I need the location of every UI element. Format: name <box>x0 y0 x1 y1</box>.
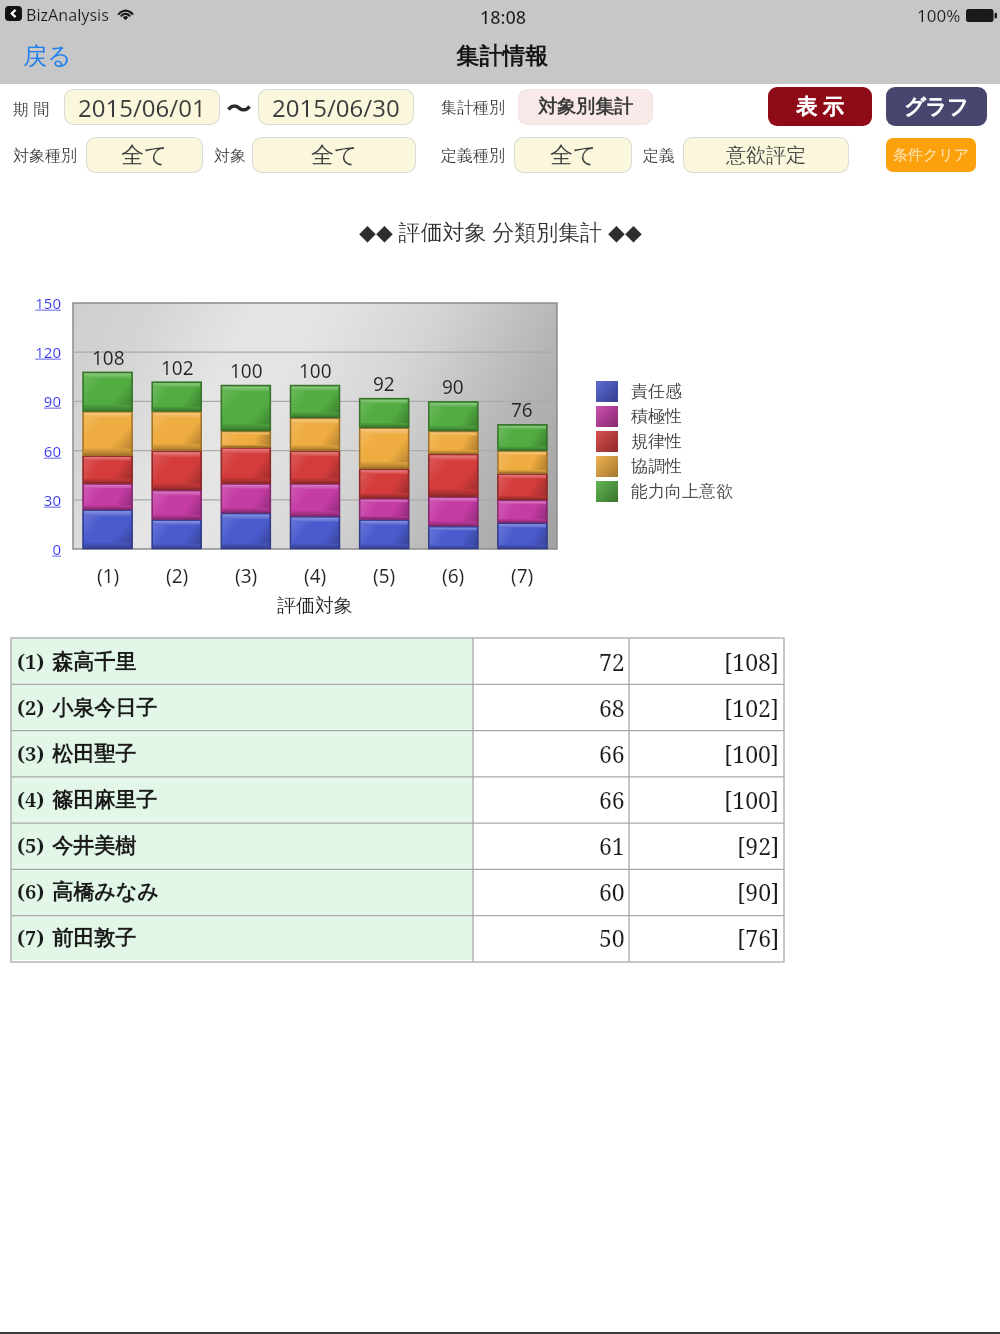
staticText: 全て <box>550 141 597 170</box>
staticText: (3) <box>235 563 258 589</box>
staticText: (1) <box>97 563 120 589</box>
button[interactable]: 全て <box>86 137 203 173</box>
staticText: 102 <box>161 355 194 381</box>
staticText: 松田聖子 <box>52 741 136 767</box>
button[interactable]: (5) <box>11 822 784 868</box>
staticText: 100 <box>299 358 332 384</box>
staticText: 68 <box>599 692 625 723</box>
staticText: 61 <box>599 830 625 861</box>
staticText: (2) <box>166 563 189 589</box>
staticText: (1) <box>17 648 45 675</box>
staticText: 協調性 <box>631 456 682 477</box>
staticText: 対象種別 <box>13 146 77 166</box>
staticText: (3) <box>17 740 45 767</box>
staticText: 90 <box>442 374 464 400</box>
staticText: 森高千里 <box>52 649 136 675</box>
button[interactable]: (2) <box>11 684 784 730</box>
button[interactable]: グラフ <box>886 87 987 126</box>
staticText: 対象 <box>214 146 246 166</box>
staticText: (5) <box>373 563 396 589</box>
staticText: 60 <box>43 441 61 461</box>
staticText: [102] <box>724 692 780 723</box>
button[interactable]: (3) <box>11 730 784 776</box>
staticText: 100% <box>917 4 961 27</box>
staticText: (6) <box>442 563 465 589</box>
button[interactable]: 全て <box>514 137 632 173</box>
staticText: (4) <box>17 786 45 813</box>
button[interactable]: 意欲評定 <box>683 137 849 173</box>
staticText: 今井美樹 <box>52 833 136 859</box>
other: Back to previous app <box>5 6 22 21</box>
staticText: (7) <box>17 924 45 951</box>
staticText: (6) <box>17 878 45 905</box>
staticText: 50 <box>599 922 625 953</box>
staticText: 2015/06/01 <box>78 91 206 124</box>
staticText: 前田敦子 <box>52 925 136 951</box>
staticText: 高橋みなみ <box>52 879 159 905</box>
staticText: 対象別集計 <box>538 95 633 119</box>
staticText: 能力向上意欲 <box>631 481 733 502</box>
button[interactable]: 条件クリア <box>886 138 976 172</box>
staticText: (4) <box>304 563 327 589</box>
button[interactable]: 表 示 <box>768 87 872 126</box>
staticText: [76] <box>737 922 780 953</box>
button[interactable]: 対象別集計 <box>518 89 653 125</box>
staticText: 篠田麻里子 <box>52 787 157 813</box>
staticText: (5) <box>17 832 45 859</box>
staticText: ◆◆ 評価対象 分類別集計 ◆◆ <box>359 216 642 246</box>
staticText: 積極性 <box>631 406 682 427</box>
staticText: 評価対象 <box>277 594 353 618</box>
staticText: (7) <box>511 563 534 589</box>
staticText: 意欲評定 <box>726 143 806 168</box>
staticText: 全て <box>311 141 358 170</box>
staticText: 150 <box>35 293 61 313</box>
staticText: 集計情報 <box>456 42 548 71</box>
staticText: 小泉今日子 <box>52 695 157 721</box>
button[interactable]: (1) <box>11 638 784 684</box>
staticText: 〜 <box>226 94 251 125</box>
staticText: 120 <box>35 342 61 362</box>
staticText: [108] <box>724 646 780 677</box>
staticText: 90 <box>43 391 61 411</box>
staticText: 18:08 <box>480 5 527 30</box>
button[interactable]: 2015/06/01 <box>64 89 220 125</box>
button[interactable]: (7) <box>11 914 784 960</box>
staticText: 66 <box>599 784 625 815</box>
staticText: [100] <box>724 784 780 815</box>
staticText: [92] <box>737 830 780 861</box>
staticText: 60 <box>599 876 625 907</box>
staticText: 66 <box>599 738 625 769</box>
button[interactable]: 戻る <box>12 34 83 78</box>
staticText: 条件クリア <box>893 146 970 165</box>
staticText: 責任感 <box>631 381 682 402</box>
staticText: 2015/06/30 <box>272 91 400 124</box>
staticText: 定義種別 <box>441 146 505 166</box>
button[interactable]: (4) <box>11 776 784 822</box>
staticText: 定義 <box>643 146 675 166</box>
staticText: [90] <box>737 876 780 907</box>
button[interactable]: 2015/06/30 <box>258 89 414 125</box>
button[interactable]: (6) <box>11 868 784 914</box>
staticText: BizAnalysis <box>26 4 109 26</box>
staticText: 全て <box>121 141 168 170</box>
staticText: グラフ <box>904 94 969 120</box>
staticText: 期 間 <box>13 98 50 120</box>
staticText: 76 <box>511 397 533 423</box>
staticText: 100 <box>230 358 263 384</box>
staticText: [100] <box>724 738 780 769</box>
staticText: 戻る <box>23 41 72 71</box>
staticText: 規律性 <box>631 431 682 452</box>
staticText: (2) <box>17 694 45 721</box>
staticText: 表 示 <box>796 92 844 121</box>
staticText: 72 <box>599 646 625 677</box>
staticText: 92 <box>373 371 395 397</box>
staticText: 0 <box>52 539 61 559</box>
staticText: 集計種別 <box>441 98 505 118</box>
button[interactable]: 全て <box>252 137 416 173</box>
staticText: 30 <box>43 490 61 510</box>
staticText: 108 <box>92 345 125 371</box>
